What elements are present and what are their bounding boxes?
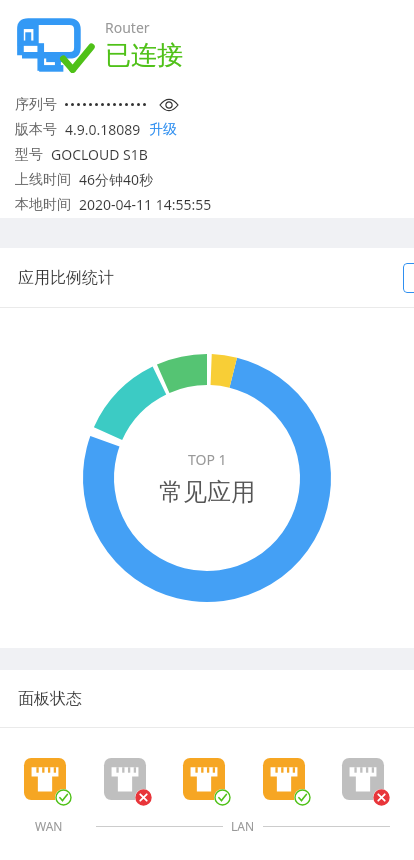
staticText: 上线时间 (15, 171, 71, 189)
button[interactable]: 显示序列号 (159, 95, 179, 115)
staticText: 升级 (149, 121, 177, 139)
button[interactable] (403, 263, 414, 293)
staticText: 4.9.0.18089 (65, 120, 141, 139)
button[interactable]: 升级 (149, 121, 177, 139)
button[interactable]: 端口未连接 (342, 758, 390, 806)
staticText: TOP 1 (188, 450, 227, 469)
staticText: GOCLOUD S1B (51, 145, 148, 164)
staticText: 46分钟40秒 (79, 170, 154, 189)
staticText: 常见应用 (159, 477, 255, 507)
staticText: 型号 (15, 146, 43, 164)
staticText: 序列号 (15, 96, 57, 114)
staticText: 2020-04-11 14:55:55 (79, 195, 212, 214)
staticText: 版本号 (15, 121, 57, 139)
button[interactable]: 端口未连接 (104, 758, 152, 806)
staticText: LAN (231, 818, 255, 834)
staticText: Router (105, 18, 150, 37)
button[interactable]: 端口已连接 (24, 758, 72, 806)
staticText: 面板状态 (18, 689, 82, 709)
staticText: WAN (35, 818, 63, 834)
staticText: 应用比例统计 (18, 268, 114, 288)
staticText: 已连接 (105, 39, 183, 72)
button[interactable]: 端口已连接 (263, 758, 311, 806)
button[interactable]: 端口已连接 (183, 758, 231, 806)
staticText: 本地时间 (15, 196, 71, 214)
